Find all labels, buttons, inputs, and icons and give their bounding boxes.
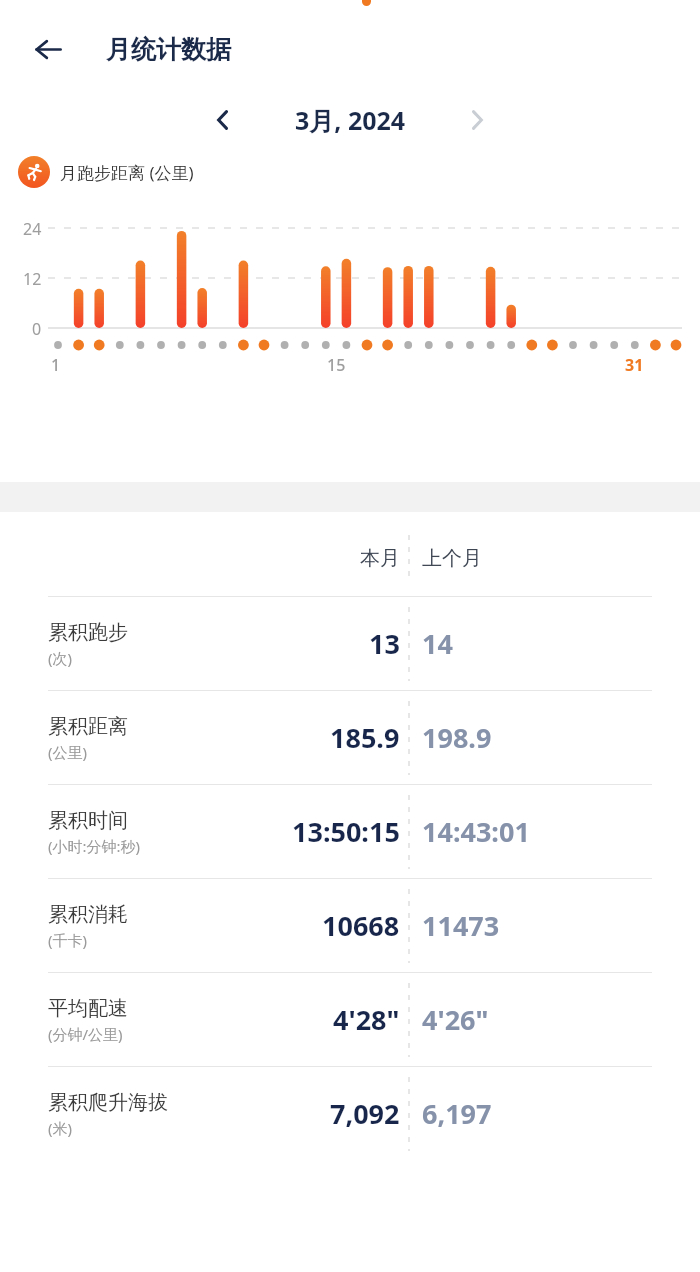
staticText: 13: [369, 625, 400, 662]
staticText: 12: [23, 268, 42, 290]
button[interactable]: 累积爬升海拔: [20, 1067, 680, 1160]
button[interactable]: 累积消耗: [20, 879, 680, 972]
staticText: 31: [625, 354, 644, 376]
staticText: 11473: [422, 907, 500, 944]
button[interactable]: 平均配速: [20, 973, 680, 1066]
staticText: 14:43:01: [422, 813, 530, 850]
staticText: 15: [327, 354, 346, 376]
staticText: (千卡): [48, 930, 88, 950]
staticText: 13:50:15: [292, 813, 400, 850]
staticText: (小时:分钟:秒): [48, 836, 141, 856]
button[interactable]: 累积距离: [20, 691, 680, 784]
staticText: 10668: [322, 907, 400, 944]
staticText: 3月, 2024: [295, 103, 406, 137]
staticText: 24: [23, 218, 42, 240]
staticText: 月统计数据: [106, 34, 231, 65]
staticText: 上个月: [422, 546, 482, 571]
staticText: 平均配速: [48, 996, 128, 1021]
staticText: (公里): [48, 742, 88, 762]
button[interactable]: Next month: [450, 93, 504, 147]
staticText: (米): [48, 1118, 73, 1138]
staticText: 月跑步距离 (公里): [60, 161, 194, 184]
staticText: 本月: [360, 546, 400, 571]
staticText: (分钟/公里): [48, 1024, 123, 1044]
staticText: 累积消耗: [48, 902, 128, 927]
staticText: 7,092: [330, 1095, 400, 1132]
staticText: 198.9: [422, 719, 492, 756]
staticText: 185.9: [330, 719, 400, 756]
staticText: 4'26": [422, 1001, 489, 1038]
staticText: 0: [32, 318, 42, 340]
button[interactable]: 累积跑步: [20, 597, 680, 690]
staticText: 累积时间: [48, 808, 128, 833]
button[interactable]: 3月, 2024: [250, 103, 450, 137]
staticText: 累积爬升海拔: [48, 1090, 168, 1115]
staticText: 14: [422, 625, 453, 662]
button[interactable]: Previous month: [196, 93, 250, 147]
button[interactable]: 累积时间: [20, 785, 680, 878]
staticText: 1: [51, 354, 61, 376]
button[interactable]: Back: [22, 23, 74, 75]
staticText: 累积跑步: [48, 620, 128, 645]
staticText: 4'28": [333, 1001, 400, 1038]
staticText: 6,197: [422, 1095, 492, 1132]
staticText: 累积距离: [48, 714, 128, 739]
staticText: (次): [48, 648, 73, 668]
